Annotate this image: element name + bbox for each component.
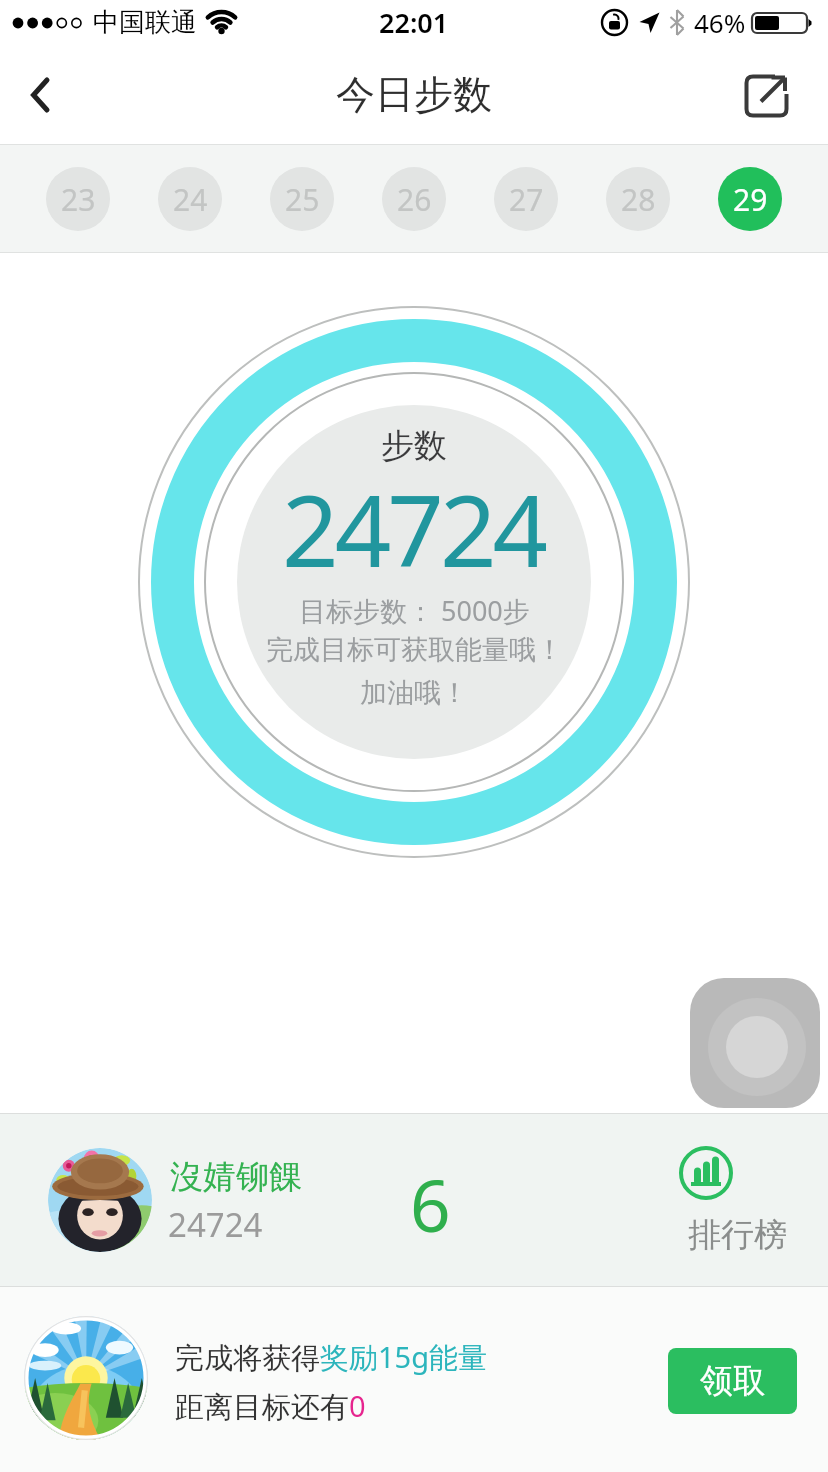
staticText: 步数 <box>381 425 447 467</box>
staticText: 23 <box>61 179 96 220</box>
button[interactable]: 23 <box>46 167 110 231</box>
staticText: 24724 <box>282 461 546 591</box>
staticText: 46% <box>694 5 746 40</box>
button[interactable]: 26 <box>382 167 446 231</box>
button[interactable] <box>14 69 66 121</box>
staticText: 25 <box>285 179 320 220</box>
staticText: 24 <box>173 179 208 220</box>
staticText: 领取 <box>700 1360 766 1402</box>
staticText: 24724 <box>168 1202 263 1247</box>
staticText: 加油哦！ <box>360 676 468 710</box>
button[interactable]: 领取 <box>668 1348 797 1414</box>
staticText: 距离目标还有0 <box>175 1386 366 1426</box>
staticText: 28 <box>621 179 656 220</box>
staticText: 完成目标可获取能量哦！ <box>266 633 563 667</box>
staticText: 22:01 <box>379 4 449 41</box>
staticText: 27 <box>509 179 544 220</box>
staticText: 6 <box>410 1156 451 1253</box>
button[interactable]: 25 <box>270 167 334 231</box>
button[interactable] <box>740 69 792 121</box>
button[interactable]: 27 <box>494 167 558 231</box>
staticText: 中国联通 <box>93 6 197 39</box>
staticText: 目标步数： 5000步 <box>299 592 530 629</box>
button[interactable]: 24 <box>158 167 222 231</box>
button[interactable]: 28 <box>606 167 670 231</box>
staticText: 排行榜 <box>688 1214 787 1256</box>
staticText: 26 <box>397 179 432 220</box>
button[interactable]: 沒婧铆餜 <box>0 1114 828 1286</box>
staticText: 29 <box>733 179 768 220</box>
staticText: 完成将获得奖励15g能量 <box>175 1337 488 1377</box>
staticText: 沒婧铆餜 <box>170 1156 302 1198</box>
button[interactable] <box>690 978 820 1108</box>
staticText: 今日步数 <box>336 70 492 119</box>
button[interactable]: 排行榜 <box>650 1134 810 1274</box>
button[interactable]: 29 <box>718 167 782 231</box>
